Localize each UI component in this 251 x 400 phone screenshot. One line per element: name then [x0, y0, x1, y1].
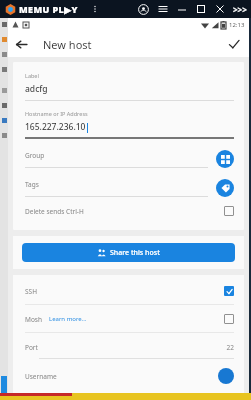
other: Account: [138, 4, 149, 15]
staticText: Share this host: [110, 248, 160, 258]
staticText: MEMU PL▶Y: [19, 3, 78, 15]
staticText: Mosh: [25, 315, 42, 324]
button[interactable]: Delete sends Ctrl-H: [25, 206, 234, 216]
button[interactable]: Tags: [25, 179, 234, 197]
button[interactable]: Checkbox: [224, 314, 234, 324]
other: Minimize: [177, 4, 187, 14]
button[interactable]: SSH: [25, 286, 234, 296]
staticText: Delete sends Ctrl-H: [25, 207, 84, 216]
button[interactable]: Add: [218, 368, 234, 384]
staticText: Username: [25, 372, 57, 381]
staticText: Group: [25, 151, 45, 160]
staticText: 165.227.236.10: [25, 121, 86, 133]
button[interactable]: Checkbox checked: [224, 286, 234, 296]
button[interactable]: Port: [25, 343, 234, 352]
staticText: 12:13: [229, 21, 245, 29]
staticText: adcfg: [25, 83, 48, 95]
button[interactable]: Mosh: [25, 314, 234, 324]
staticText: >>>: [233, 4, 247, 15]
other: Close: [215, 4, 225, 14]
staticText: Hostname or IP Address: [25, 110, 88, 117]
staticText: 22: [226, 343, 234, 352]
other: Maximize: [196, 4, 206, 14]
button[interactable]: Select group: [216, 150, 234, 168]
button[interactable]: Back: [8, 31, 34, 57]
staticText: Tags: [25, 180, 39, 189]
button[interactable]: Checkbox: [224, 206, 234, 216]
button[interactable]: Group: [25, 150, 234, 168]
button[interactable]: Learn more...: [49, 315, 87, 323]
staticText: Port: [25, 343, 38, 352]
staticText: New host: [43, 37, 92, 52]
other: Menu: [158, 4, 168, 14]
staticText: Label: [25, 72, 39, 79]
button[interactable]: Select tags: [216, 179, 234, 197]
staticText: Learn more...: [49, 315, 87, 323]
staticText: SSH: [25, 287, 37, 296]
button[interactable]: Share this host: [22, 243, 235, 262]
button[interactable]: Save: [221, 31, 247, 57]
